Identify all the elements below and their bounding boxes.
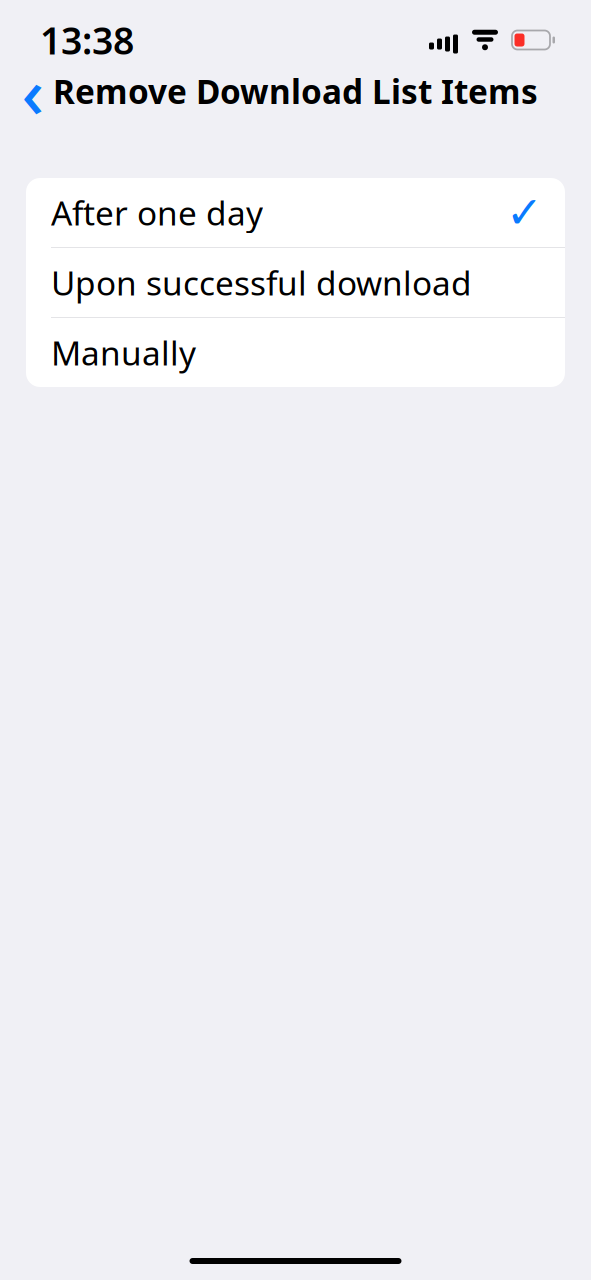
button[interactable]: Manually bbox=[26, 318, 565, 387]
button[interactable]: After one day bbox=[26, 178, 565, 247]
button[interactable]: Back bbox=[6, 64, 60, 118]
staticText: Upon successful download bbox=[51, 260, 472, 305]
staticText: After one day bbox=[51, 190, 263, 235]
staticText: ✓ bbox=[506, 187, 543, 237]
staticText: Manually bbox=[51, 330, 196, 375]
staticText: 13:38 bbox=[40, 15, 134, 65]
staticText: Remove Download List Items bbox=[53, 69, 538, 113]
staticText: ‹ bbox=[21, 45, 44, 137]
button[interactable]: Upon successful download bbox=[26, 248, 565, 317]
